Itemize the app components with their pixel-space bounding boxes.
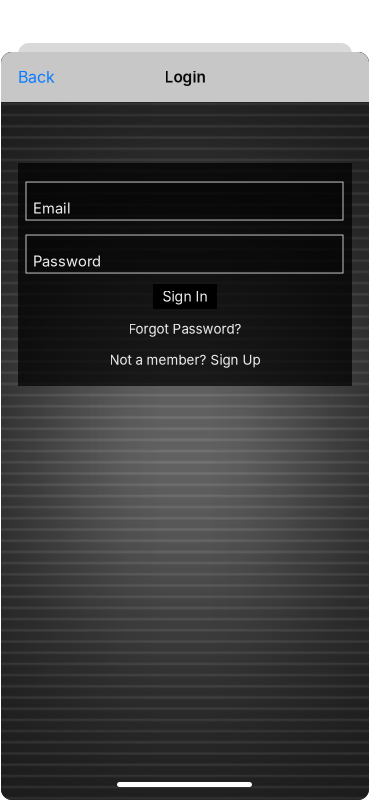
button[interactable]: Back	[14, 61, 59, 93]
staticText: Not a member? Sign Up	[109, 352, 260, 368]
staticText: Sign In	[162, 288, 207, 305]
button[interactable]: Not a member? Sign Up	[18, 350, 352, 370]
staticText: Password	[33, 252, 101, 270]
staticText: Login	[164, 68, 205, 86]
button[interactable]: Sign In	[153, 284, 217, 309]
button[interactable]: Forgot Password?	[18, 319, 352, 339]
staticText: Back	[18, 67, 55, 87]
staticText: Forgot Password?	[128, 321, 241, 337]
staticText: Email	[33, 199, 71, 217]
